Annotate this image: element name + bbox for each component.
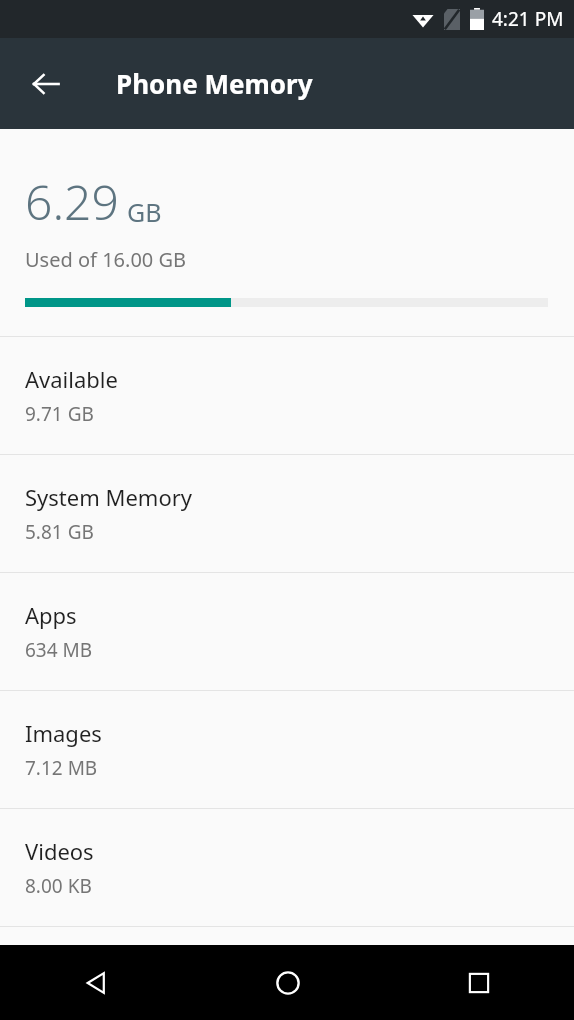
button[interactable]: Apps: [0, 573, 574, 690]
button[interactable]: Home: [192, 945, 383, 1020]
staticText: System Memory: [25, 482, 193, 512]
staticText: 9.71 GB: [25, 401, 94, 427]
button[interactable]: Available: [0, 337, 574, 454]
staticText: Apps: [25, 600, 77, 630]
staticText: Videos: [25, 836, 94, 866]
staticText: 8.00 KB: [25, 873, 92, 899]
staticText: 5.81 GB: [25, 519, 94, 545]
staticText: 634 MB: [25, 637, 93, 663]
staticText: Phone Memory: [116, 66, 313, 101]
staticText: 6.29: [25, 169, 119, 234]
staticText: Images: [25, 718, 102, 748]
staticText: 4:21 PM: [492, 6, 564, 32]
button[interactable]: Back: [0, 945, 192, 1020]
button[interactable]: Images: [0, 691, 574, 808]
button[interactable]: Videos: [0, 809, 574, 926]
staticText: 7.12 MB: [25, 755, 98, 781]
staticText: Available: [25, 364, 118, 394]
staticText: Used of 16.00 GB: [25, 246, 187, 273]
button[interactable]: Back: [16, 54, 76, 114]
staticText: GB: [127, 195, 162, 229]
button[interactable]: Recent apps: [383, 945, 574, 1020]
button[interactable]: System Memory: [0, 455, 574, 572]
